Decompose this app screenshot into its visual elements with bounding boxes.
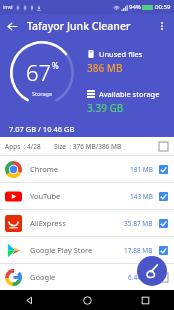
staticText: Unused files: [99, 49, 143, 59]
button[interactable]: Back: [0, 290, 58, 310]
button[interactable]: AliExpress: [0, 210, 174, 237]
staticText: Storage: [32, 90, 53, 97]
button[interactable]: Select Chrome: [158, 164, 169, 175]
staticText: AliExpress: [30, 218, 124, 228]
staticText: 35.87 MB: [124, 219, 153, 228]
staticText: 94%: [129, 3, 141, 11]
staticText: Chrome: [30, 164, 130, 174]
staticText: Google: [30, 272, 128, 282]
staticText: 6.44 MB: [128, 273, 153, 282]
staticText: 17.88 MB: [124, 246, 153, 255]
staticText: 143 MB: [130, 192, 153, 201]
button[interactable]: Google: [0, 264, 174, 290]
button[interactable]: Select Google Play Store: [158, 245, 169, 256]
staticText: Tafayor Junk Cleaner: [27, 19, 131, 33]
button[interactable]: Select YouTube: [158, 191, 169, 202]
staticText: YouTube: [30, 191, 130, 201]
button[interactable]: Clean junk files: [137, 256, 167, 286]
staticText: 00:59: [155, 3, 171, 11]
staticText: %: [52, 60, 59, 71]
staticText: 67: [26, 57, 52, 87]
button[interactable]: More options: [150, 14, 174, 38]
staticText: 181 MB: [130, 165, 153, 174]
staticText: 7.07 GB / 10.46 GB: [9, 124, 75, 134]
button[interactable]: Select AliExpress: [158, 218, 169, 229]
button[interactable]: Google Play Store: [0, 237, 174, 264]
staticText: 386 MB: [87, 61, 123, 75]
button[interactable]: Home: [58, 290, 116, 310]
button[interactable]: Recent apps: [116, 290, 174, 310]
button[interactable]: Back: [0, 14, 24, 38]
staticText: Google Play Store: [30, 245, 124, 255]
button[interactable]: Select Google: [158, 272, 169, 283]
button[interactable]: Chrome: [0, 156, 174, 183]
staticText: Apps : 4/28: [5, 142, 41, 151]
staticText: Available storage: [99, 89, 160, 99]
staticText: inwi: [3, 4, 13, 11]
button[interactable]: Select all apps: [158, 141, 169, 152]
button[interactable]: YouTube: [0, 183, 174, 210]
staticText: 3.39 GB: [87, 101, 124, 115]
staticText: Size : 376 MB/386 MB: [54, 142, 122, 151]
